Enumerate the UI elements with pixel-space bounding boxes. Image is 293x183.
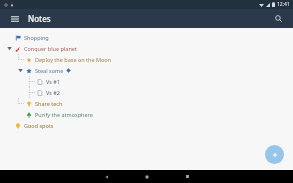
staticText: Vs #2 xyxy=(46,89,61,96)
staticText: Vs #1 xyxy=(46,78,61,85)
button[interactable]: Vs #1 xyxy=(0,76,293,87)
button[interactable]: Steal some xyxy=(0,65,293,76)
staticText: 12:41 xyxy=(277,1,290,8)
button[interactable]: Recent apps xyxy=(167,170,207,183)
button[interactable]: Vs #2 xyxy=(0,87,293,98)
staticText: Good spots xyxy=(24,122,54,129)
staticText: Steal some xyxy=(35,67,64,74)
staticText: Deploy the base on the Moon xyxy=(35,56,112,63)
button[interactable]: Purify the atmosphere xyxy=(0,109,293,120)
button[interactable]: Shopping xyxy=(0,32,293,43)
button[interactable]: Deploy the base on the Moon xyxy=(0,54,293,65)
staticText: Purify the atmosphere xyxy=(35,111,93,118)
button[interactable]: Share tech xyxy=(0,98,293,109)
button[interactable]: Add note xyxy=(265,145,284,164)
staticText: Conquer blue planet xyxy=(24,45,77,52)
staticText: Shopping xyxy=(24,34,49,41)
button[interactable]: Back xyxy=(87,170,127,183)
button[interactable]: Home xyxy=(127,170,167,183)
button[interactable]: Conquer blue planet xyxy=(0,43,293,54)
button[interactable]: Search xyxy=(272,12,285,25)
staticText: Share tech xyxy=(35,100,63,107)
staticText: Notes xyxy=(28,13,51,24)
button[interactable]: Open navigation menu xyxy=(9,13,21,25)
button[interactable]: Good spots xyxy=(0,120,293,131)
